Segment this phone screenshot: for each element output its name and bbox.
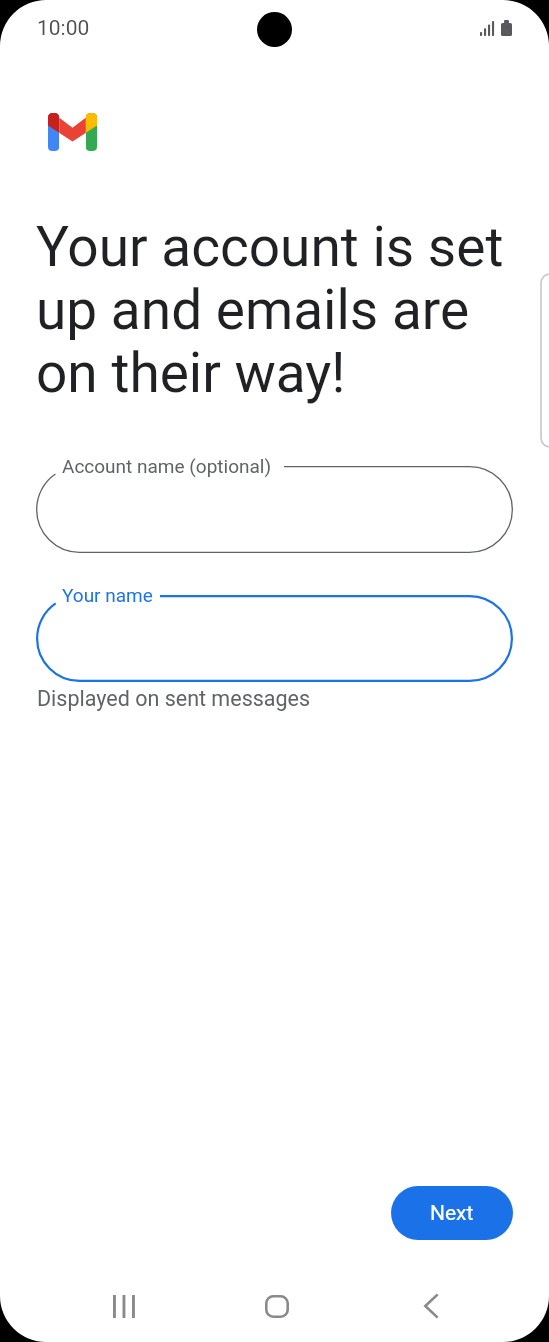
button[interactable]: Recent apps (100, 1282, 148, 1330)
button[interactable]: Your name (36, 595, 513, 682)
staticText: Next (430, 1201, 474, 1226)
staticText: Displayed on sent messages (37, 686, 311, 711)
button[interactable]: Home (253, 1282, 301, 1330)
button[interactable]: Gmail (48, 113, 97, 151)
staticText: Your name (62, 584, 153, 606)
staticText: Your account is set up and emails are on… (36, 215, 516, 405)
button[interactable]: Back (407, 1282, 455, 1330)
staticText: Account name (optional) (62, 455, 272, 477)
staticText: 10:00 (37, 16, 90, 41)
button[interactable]: Account name (optional) (36, 466, 513, 553)
button[interactable]: Next (391, 1186, 513, 1240)
